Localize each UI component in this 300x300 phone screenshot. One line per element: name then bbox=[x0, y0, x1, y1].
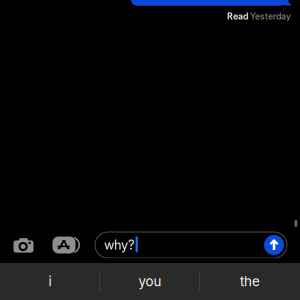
staticText: Read bbox=[227, 11, 248, 21]
button[interactable]: Apps bbox=[47, 232, 95, 258]
staticText: Yesterday bbox=[250, 11, 291, 21]
staticText: why? bbox=[104, 237, 134, 253]
button[interactable]: you bbox=[100, 263, 200, 300]
button[interactable]: the bbox=[200, 263, 300, 300]
staticText: you bbox=[138, 273, 161, 289]
button[interactable]: i bbox=[0, 263, 100, 300]
button[interactable]: Camera bbox=[0, 232, 47, 258]
staticText: i bbox=[48, 273, 51, 289]
staticText bbox=[248, 11, 250, 21]
staticText: the bbox=[240, 273, 260, 289]
button[interactable]: Send bbox=[264, 235, 284, 255]
